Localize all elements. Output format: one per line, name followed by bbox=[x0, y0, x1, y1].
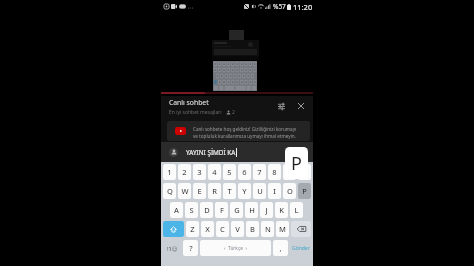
button[interactable]: Close live chat bbox=[293, 98, 309, 114]
staticText: Q bbox=[167, 186, 173, 196]
button[interactable]: 0 bbox=[298, 164, 311, 180]
staticText: V bbox=[235, 224, 240, 234]
staticText: A bbox=[174, 205, 179, 215]
staticText: U bbox=[257, 186, 263, 196]
button[interactable]: P bbox=[298, 183, 311, 199]
button[interactable]: T bbox=[223, 183, 236, 199]
button[interactable]: X bbox=[201, 221, 214, 237]
staticText: ve topluluk kurallarımıza uymayı ihmal e… bbox=[193, 133, 296, 139]
button[interactable]: 7 bbox=[253, 164, 266, 180]
button[interactable]: 3 bbox=[193, 164, 206, 180]
staticText: J bbox=[265, 205, 268, 215]
button[interactable]: F bbox=[215, 202, 228, 218]
button[interactable]: YAYINI ŞİMDİ KA bbox=[161, 142, 313, 162]
staticText: 1 bbox=[167, 167, 172, 177]
staticText: ‹ Türkçe › bbox=[224, 245, 247, 252]
staticText: , bbox=[279, 243, 282, 253]
button[interactable]: 4 bbox=[208, 164, 221, 180]
staticText: C bbox=[220, 224, 225, 234]
button[interactable]: K bbox=[275, 202, 288, 218]
button[interactable]: H bbox=[245, 202, 258, 218]
staticText: S bbox=[189, 205, 194, 215]
button[interactable]: 8 bbox=[268, 164, 281, 180]
button[interactable]: Gönder bbox=[290, 240, 311, 256]
button[interactable]: ‹ Türkçe › bbox=[200, 240, 271, 256]
button[interactable]: Z bbox=[186, 221, 199, 237]
staticText: Canlı sohbete hoş geldiniz! Gizliliğiniz… bbox=[193, 126, 297, 132]
button[interactable]: N bbox=[261, 221, 274, 237]
staticText: 4 bbox=[212, 167, 217, 177]
button[interactable]: 2 bbox=[178, 164, 191, 180]
button[interactable]: Canlı sohbet bbox=[161, 96, 313, 120]
staticText: Canlı sohbet bbox=[169, 98, 209, 107]
button[interactable]: L bbox=[290, 202, 303, 218]
button[interactable]: M bbox=[276, 221, 289, 237]
button[interactable] bbox=[163, 221, 184, 237]
staticText: 11:20 bbox=[293, 2, 313, 12]
button[interactable]: E bbox=[193, 183, 206, 199]
staticText: B bbox=[250, 224, 255, 234]
staticText: O bbox=[287, 186, 293, 196]
staticText: G bbox=[234, 205, 240, 215]
staticText: K bbox=[279, 205, 284, 215]
button[interactable]: ? bbox=[183, 240, 198, 256]
button[interactable]: V bbox=[231, 221, 244, 237]
button[interactable]: W bbox=[178, 183, 191, 199]
button[interactable]: S bbox=[185, 202, 198, 218]
staticText: E bbox=[197, 186, 202, 196]
button[interactable]: Q bbox=[163, 183, 176, 199]
button[interactable]: G bbox=[230, 202, 243, 218]
staticText: !1☺ bbox=[167, 245, 178, 252]
button[interactable]: 9 bbox=[283, 164, 296, 180]
staticText: P bbox=[291, 151, 302, 176]
button[interactable]: 6 bbox=[238, 164, 251, 180]
button[interactable]: O bbox=[283, 183, 296, 199]
staticText: Gönder bbox=[292, 245, 310, 252]
button[interactable]: U bbox=[253, 183, 266, 199]
staticText: ? bbox=[189, 243, 193, 253]
staticText: X bbox=[205, 224, 210, 234]
staticText: R bbox=[212, 186, 217, 196]
staticText: W bbox=[181, 186, 189, 196]
staticText: M bbox=[279, 224, 286, 234]
button[interactable]: J bbox=[260, 202, 273, 218]
staticText: T bbox=[227, 186, 232, 196]
button[interactable] bbox=[291, 221, 311, 237]
staticText: 7 bbox=[257, 167, 262, 177]
button[interactable]: A bbox=[170, 202, 183, 218]
staticText: En iyi sohbet mesajları bbox=[169, 109, 222, 116]
button[interactable]: D bbox=[200, 202, 213, 218]
staticText: 3 bbox=[197, 167, 202, 177]
staticText: 5 bbox=[227, 167, 232, 177]
staticText: YAYINI ŞİMDİ KA bbox=[186, 148, 236, 157]
staticText: I bbox=[273, 186, 276, 196]
button[interactable]: R bbox=[208, 183, 221, 199]
staticText: 2 bbox=[232, 109, 235, 116]
staticText: Z bbox=[190, 224, 195, 234]
staticText: 6 bbox=[242, 167, 247, 177]
button[interactable]: 1 bbox=[163, 164, 176, 180]
button[interactable]: 5 bbox=[223, 164, 236, 180]
staticText: %57 bbox=[273, 2, 286, 11]
button[interactable]: C bbox=[216, 221, 229, 237]
staticText: H bbox=[249, 205, 255, 215]
button[interactable]: I bbox=[268, 183, 281, 199]
button[interactable]: Canlı sohbete hoş geldiniz! Gizliliğiniz… bbox=[167, 121, 310, 141]
button[interactable]: Y bbox=[238, 183, 251, 199]
staticText: Y bbox=[242, 186, 247, 196]
staticText: 8 bbox=[272, 167, 277, 177]
button[interactable]: , bbox=[273, 240, 288, 256]
staticText: D bbox=[204, 205, 210, 215]
button[interactable]: !1☺ bbox=[163, 240, 181, 256]
staticText: P bbox=[302, 186, 307, 196]
staticText: 2 bbox=[182, 167, 187, 177]
button[interactable]: B bbox=[246, 221, 259, 237]
staticText: N bbox=[265, 224, 271, 234]
staticText: F bbox=[220, 205, 224, 215]
staticText: L bbox=[294, 205, 299, 215]
button[interactable]: Chat settings bbox=[273, 98, 289, 114]
